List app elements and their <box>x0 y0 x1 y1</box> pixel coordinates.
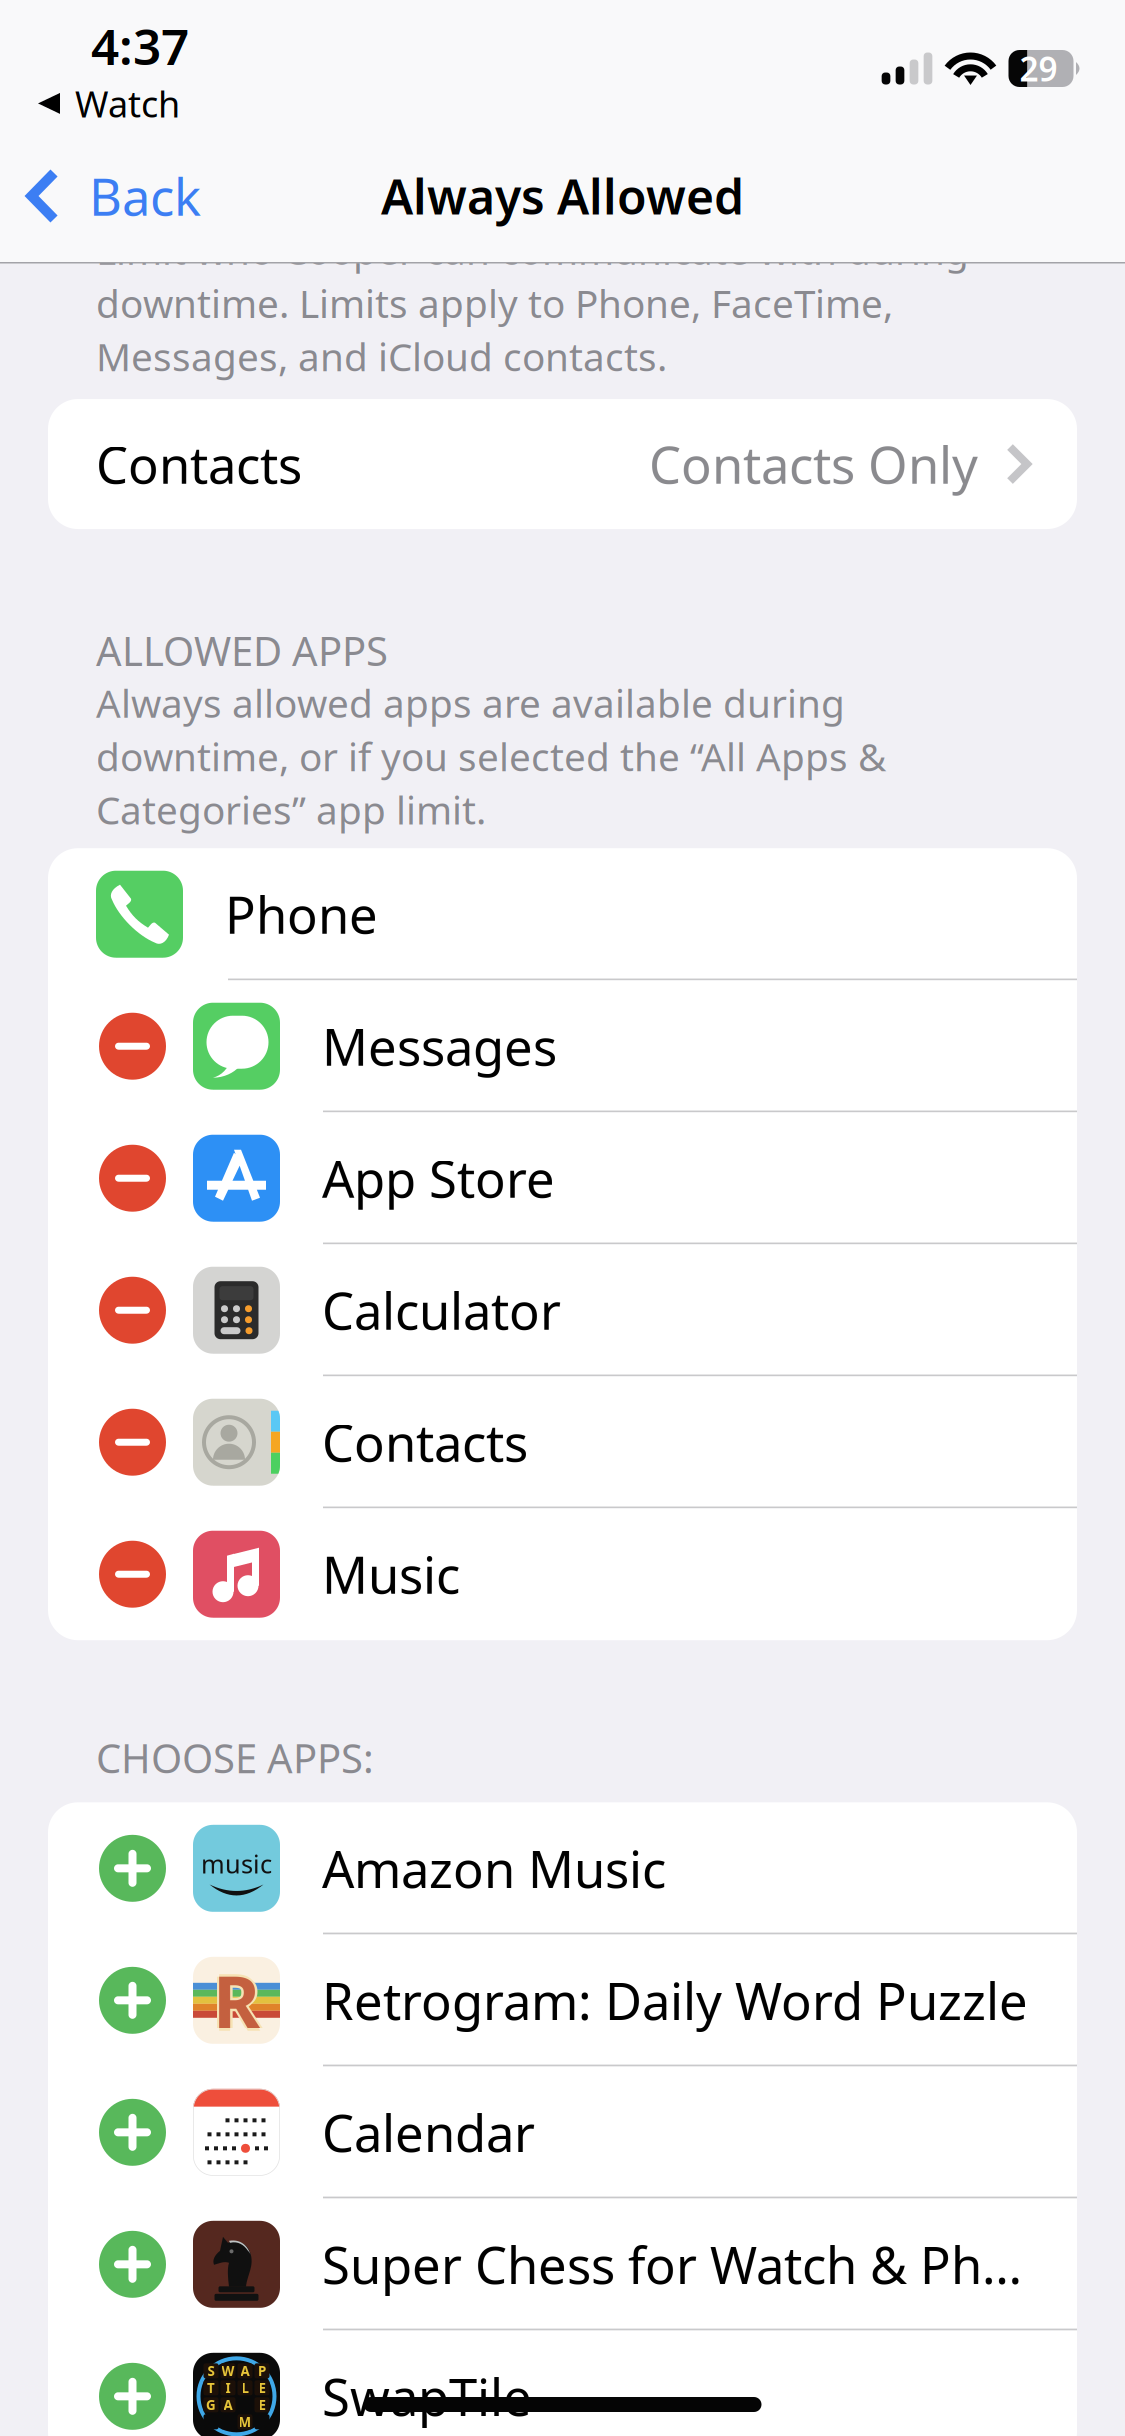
staticText: E <box>258 2379 265 2397</box>
staticText: Watch <box>75 79 180 127</box>
staticText: S <box>207 2362 214 2380</box>
staticText: E <box>258 2396 265 2414</box>
staticText: Contacts Only <box>649 430 978 498</box>
button[interactable]: Messages <box>48 980 1077 1112</box>
staticText: R <box>213 1952 260 2048</box>
button[interactable]: App Store <box>48 1112 1077 1244</box>
staticText: Calendar <box>322 2099 535 2166</box>
staticText: Amazon Music <box>322 1835 666 1902</box>
staticText: Back <box>89 162 201 230</box>
staticText: Contacts <box>322 1409 528 1476</box>
staticText: L <box>241 2379 248 2397</box>
button[interactable]: S <box>48 2330 1077 2436</box>
staticText: Messages <box>322 1013 557 1080</box>
staticText: 4:37 <box>91 13 189 78</box>
staticText: Retrogram: Daily Word Puzzle <box>322 1967 1028 2034</box>
staticText: Phone <box>225 881 378 948</box>
staticText: G <box>206 2396 216 2414</box>
button[interactable]: Music <box>48 1508 1077 1640</box>
staticText: Always Allowed <box>381 164 744 228</box>
staticText: A <box>240 2362 249 2380</box>
button[interactable]: Back <box>0 132 225 260</box>
staticText: R <box>215 1952 262 2048</box>
staticText: Super Chess for Watch & Ph… <box>322 2231 1022 2298</box>
staticText: Contacts <box>96 430 302 498</box>
staticText: A <box>223 2396 232 2414</box>
staticText: Music <box>322 1541 460 1608</box>
staticText: W <box>221 2362 234 2380</box>
staticText: App Store <box>322 1145 555 1212</box>
staticText: T <box>207 2379 215 2397</box>
staticText: CHOOSE APPS: <box>96 1731 374 1784</box>
button[interactable]: Contacts <box>48 399 1077 529</box>
staticText: Calculator <box>322 1277 561 1344</box>
button[interactable]: music <box>48 1802 1077 1934</box>
button[interactable]: Phone <box>48 848 1077 980</box>
button[interactable]: R <box>48 1934 1077 2066</box>
staticText: R <box>213 1955 260 2051</box>
staticText: SwapTile <box>322 2363 532 2430</box>
button[interactable]: Super Chess for Watch & Ph… <box>48 2198 1077 2330</box>
staticText: M <box>238 2413 251 2431</box>
staticText: R <box>210 1952 257 2048</box>
button[interactable]: Calendar <box>48 2066 1077 2198</box>
staticText: music <box>201 1847 272 1880</box>
staticText: P <box>258 2362 266 2380</box>
staticText: I <box>225 2379 230 2397</box>
staticText: Always allowed apps are available during… <box>96 677 886 835</box>
staticText: R <box>213 1950 260 2046</box>
button[interactable]: Calculator <box>48 1244 1077 1376</box>
staticText: ALLOWED APPS <box>96 624 388 677</box>
button[interactable]: Contacts <box>48 1376 1077 1508</box>
staticText: Limit who Cooper can communicate with du… <box>96 224 969 382</box>
staticText: 29 <box>1019 46 1057 91</box>
